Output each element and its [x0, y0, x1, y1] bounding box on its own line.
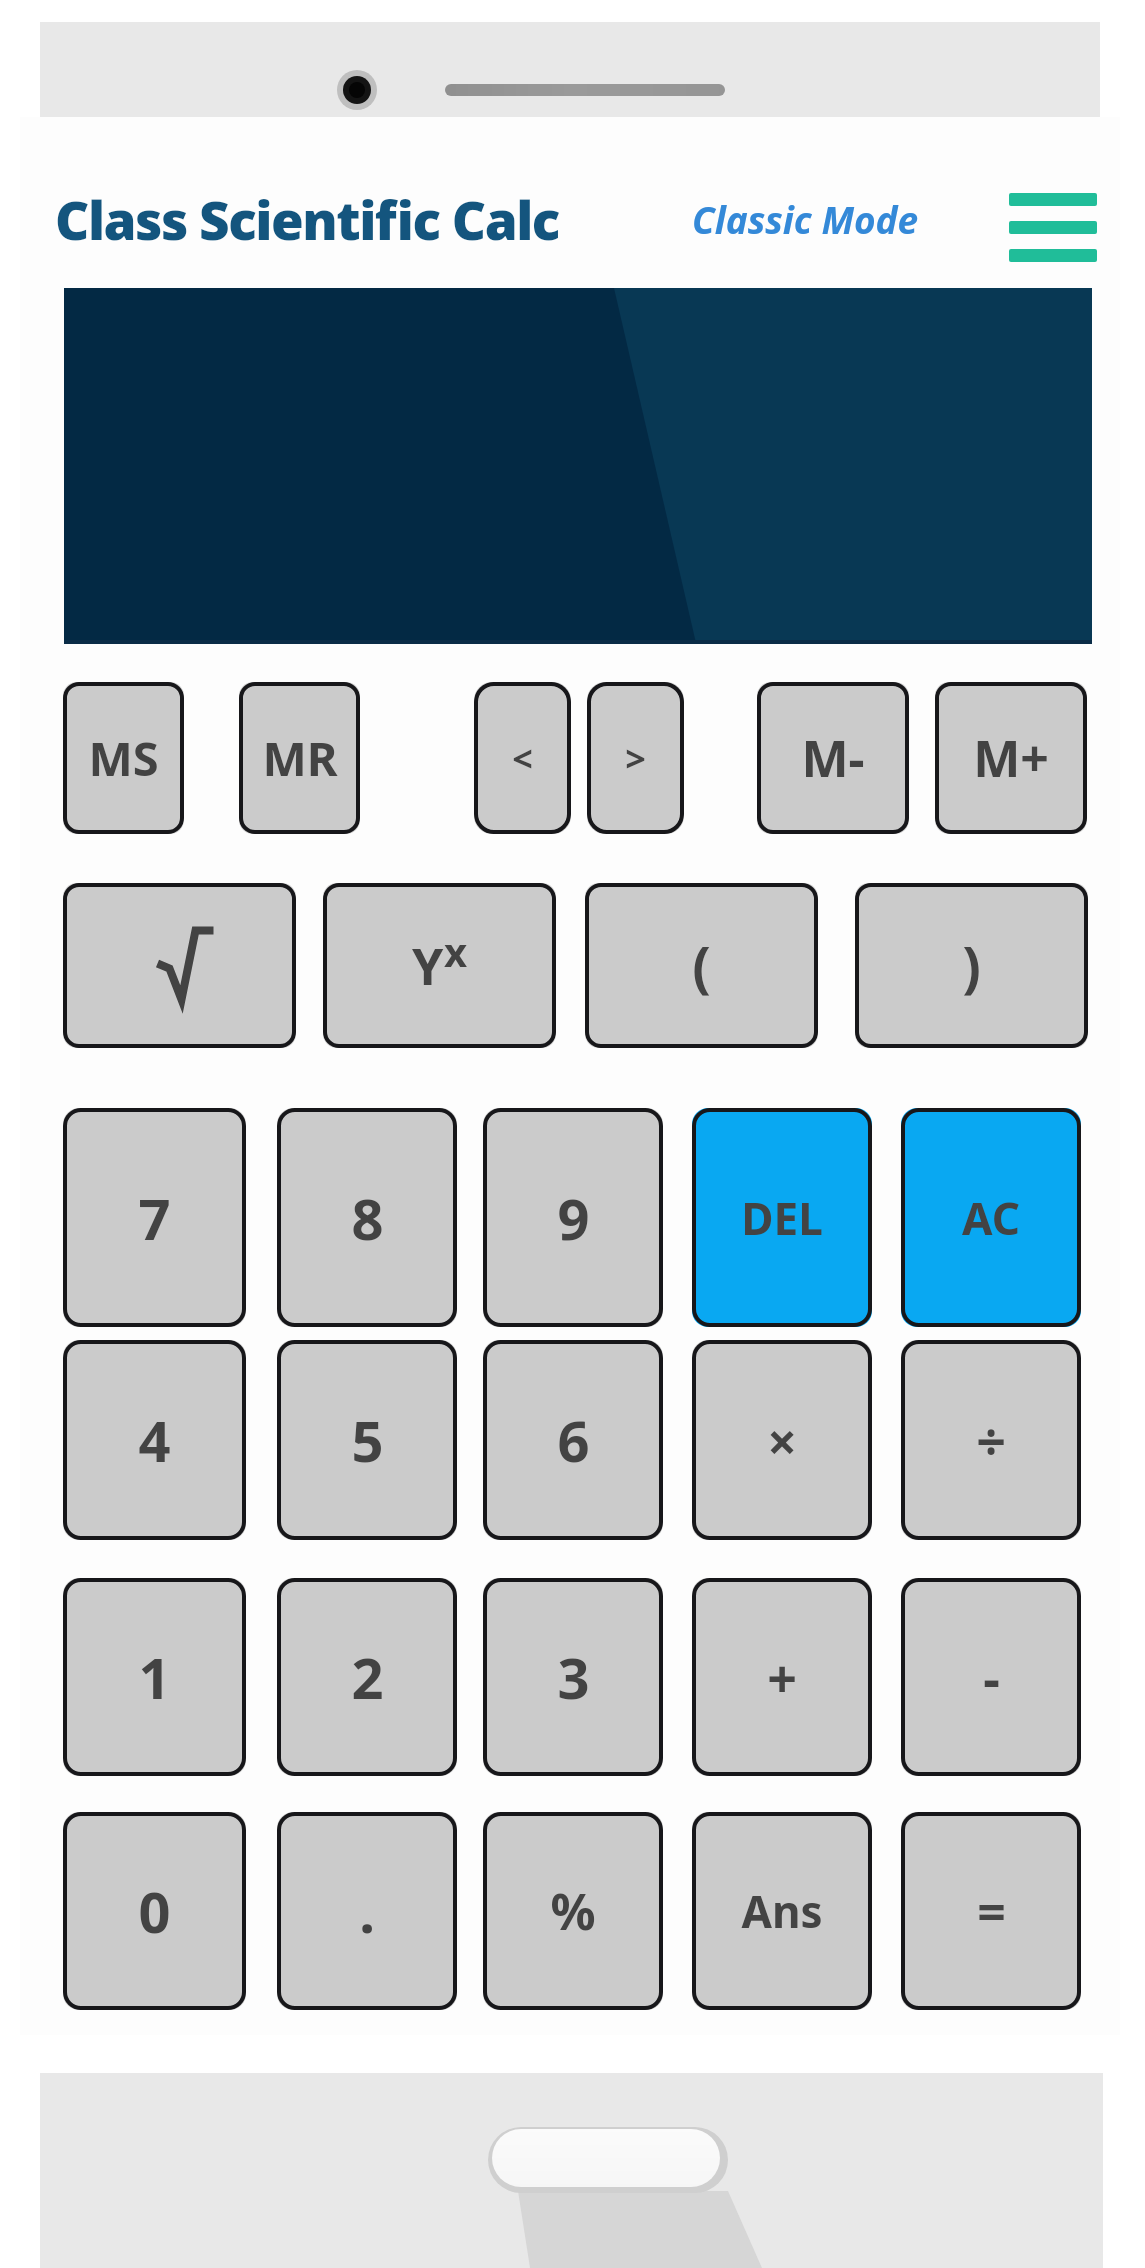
button[interactable]: =	[901, 1812, 1081, 2010]
staticText: 3	[557, 1639, 590, 1715]
button[interactable]: 6	[483, 1340, 663, 1540]
staticText: 9	[557, 1180, 590, 1256]
button[interactable]: 8	[277, 1108, 457, 1327]
button[interactable]: 5	[277, 1340, 457, 1540]
button[interactable]: ÷	[901, 1340, 1081, 1540]
button[interactable]: AC	[901, 1108, 1081, 1327]
staticText: MS	[88, 726, 159, 790]
staticText: x	[444, 924, 468, 978]
staticText: DEL	[741, 1188, 823, 1248]
staticText: 1	[138, 1639, 171, 1715]
button[interactable]: Menu	[1000, 175, 1105, 280]
button[interactable]: Ans	[692, 1812, 872, 2010]
button[interactable]: Home	[485, 2125, 721, 2195]
staticText: %	[550, 1877, 596, 1945]
button[interactable]: M+	[935, 682, 1087, 834]
button[interactable]: Y	[323, 883, 556, 1048]
staticText: =	[977, 1877, 1006, 1945]
button[interactable]: 7	[63, 1108, 246, 1327]
button[interactable]: MR	[239, 682, 360, 834]
button[interactable]: .	[277, 1812, 457, 2010]
button[interactable]: 9	[483, 1108, 663, 1327]
button[interactable]: DEL	[692, 1108, 872, 1327]
button[interactable]: -	[901, 1578, 1081, 1776]
staticText: .	[359, 1873, 375, 1949]
staticText: 7	[138, 1180, 171, 1256]
staticText: Ans	[741, 1881, 823, 1941]
button[interactable]: %	[483, 1812, 663, 2010]
staticText: (	[692, 928, 711, 1003]
staticText: )	[962, 928, 981, 1003]
staticText: Y	[412, 932, 444, 1000]
staticText: Classic Mode	[692, 194, 919, 244]
button[interactable]: )	[855, 883, 1088, 1048]
staticText: 2	[351, 1639, 384, 1715]
button[interactable]: M-	[757, 682, 909, 834]
button[interactable]: 1	[63, 1578, 246, 1776]
staticText: -	[983, 1642, 1000, 1713]
button[interactable]: ×	[692, 1340, 872, 1540]
staticText: ÷	[976, 1405, 1006, 1476]
staticText: 5	[351, 1402, 384, 1478]
button[interactable]: <	[474, 682, 571, 834]
button[interactable]: Square root	[63, 883, 296, 1048]
button[interactable]: +	[692, 1578, 872, 1776]
button[interactable]: Classic Mode	[688, 190, 923, 248]
button[interactable]: 2	[277, 1578, 457, 1776]
button[interactable]: 0	[63, 1812, 246, 2010]
staticText: 4	[138, 1402, 171, 1478]
staticText: 8	[351, 1180, 384, 1256]
staticText: +	[767, 1642, 797, 1713]
staticText: AC	[962, 1188, 1020, 1248]
button[interactable]: >	[587, 682, 684, 834]
staticText: M+	[973, 724, 1049, 792]
staticText: 6	[557, 1402, 590, 1478]
staticText: Class Scientific Calc	[55, 183, 559, 255]
button[interactable]: 3	[483, 1578, 663, 1776]
staticText: M-	[801, 724, 865, 792]
button[interactable]: 4	[63, 1340, 246, 1540]
button[interactable]: MS	[63, 682, 184, 834]
button[interactable]: (	[585, 883, 818, 1048]
staticText: >	[625, 734, 646, 783]
staticText: ×	[767, 1405, 797, 1476]
staticText: MR	[262, 726, 338, 790]
staticText: <	[512, 734, 533, 783]
staticText: 0	[138, 1873, 171, 1949]
